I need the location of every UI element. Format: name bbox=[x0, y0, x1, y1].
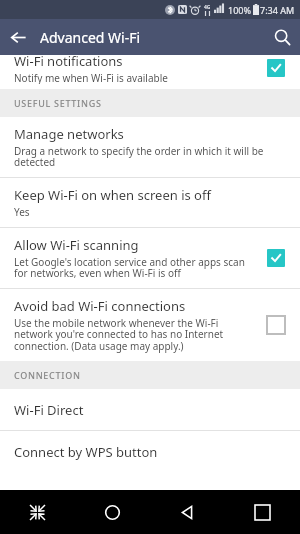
button[interactable]: Connect by WPS button bbox=[0, 431, 300, 472]
staticText: Use the mobile network whenever the Wi-F… bbox=[14, 316, 248, 353]
button[interactable]: Wi-Fi notifications bbox=[0, 50, 300, 84]
staticText: Wi-Fi notifications bbox=[14, 52, 123, 70]
staticText: 7:34 AM bbox=[260, 4, 295, 16]
staticText: Drag a network to specify the order in w… bbox=[14, 144, 292, 169]
staticText: CONNECTION bbox=[14, 369, 81, 381]
staticText: Avoid bad Wi-Fi connections bbox=[14, 297, 186, 315]
staticText: Advanced Wi-Fi bbox=[40, 28, 141, 47]
button[interactable]: Recent apps bbox=[225, 490, 300, 534]
button[interactable]: Unchecked bbox=[256, 305, 296, 345]
staticText: Notify me when Wi-Fi is available bbox=[14, 71, 168, 84]
button[interactable]: Minimize bbox=[0, 490, 75, 534]
button[interactable]: Avoid bad Wi-Fi connections bbox=[0, 289, 300, 361]
staticText: Allow Wi-Fi scanning bbox=[14, 236, 139, 254]
staticText: Let Google's location service and other … bbox=[14, 255, 248, 280]
staticText: 100% bbox=[228, 4, 251, 16]
staticText: USEFUL SETTINGS bbox=[14, 97, 102, 109]
button[interactable]: Manage networks bbox=[0, 117, 300, 177]
button[interactable]: Checked bbox=[256, 238, 296, 278]
staticText: Wi-Fi Direct bbox=[14, 401, 84, 419]
staticText: Manage networks bbox=[14, 125, 124, 143]
button[interactable]: Search bbox=[264, 19, 300, 55]
button[interactable]: Allow Wi-Fi scanning bbox=[0, 228, 300, 288]
button[interactable]: Wi-Fi Direct bbox=[0, 389, 300, 430]
staticText: Connect by WPS button bbox=[14, 443, 158, 461]
staticText: Yes bbox=[14, 205, 30, 219]
button[interactable]: Keep Wi-Fi on when screen is off bbox=[0, 178, 300, 227]
button[interactable]: Back bbox=[0, 19, 36, 55]
button[interactable]: Checked bbox=[256, 52, 296, 84]
button[interactable]: Home bbox=[75, 490, 150, 534]
staticText: 4G bbox=[204, 4, 211, 11]
staticText: Keep Wi-Fi on when screen is off bbox=[14, 186, 211, 204]
button[interactable]: Back bbox=[150, 490, 225, 534]
